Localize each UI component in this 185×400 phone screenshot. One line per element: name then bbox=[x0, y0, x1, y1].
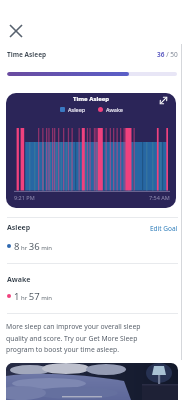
staticText: Awake bbox=[7, 275, 31, 285]
staticText: Awake bbox=[106, 106, 123, 113]
staticText: Time Asleep bbox=[7, 50, 47, 59]
staticText: More sleep can improve your overall slee… bbox=[6, 322, 141, 354]
staticText: 9:21 PM bbox=[14, 194, 35, 201]
staticText: 1 hr 57 min bbox=[14, 290, 53, 302]
staticText: Asleep bbox=[68, 106, 86, 113]
staticText: 7:54 AM bbox=[149, 194, 170, 201]
button[interactable] bbox=[6, 363, 178, 400]
button[interactable]: Edit Goal bbox=[150, 224, 178, 233]
staticText: Time Asleep bbox=[73, 95, 110, 103]
staticText: Edit Goal bbox=[150, 224, 178, 233]
button[interactable] bbox=[6, 21, 26, 41]
staticText: 36 / 50 bbox=[157, 50, 178, 59]
staticText: Asleep bbox=[7, 223, 31, 233]
staticText: 8 hr 36 min bbox=[14, 240, 53, 252]
button[interactable]: Time Asleep bbox=[6, 93, 176, 208]
